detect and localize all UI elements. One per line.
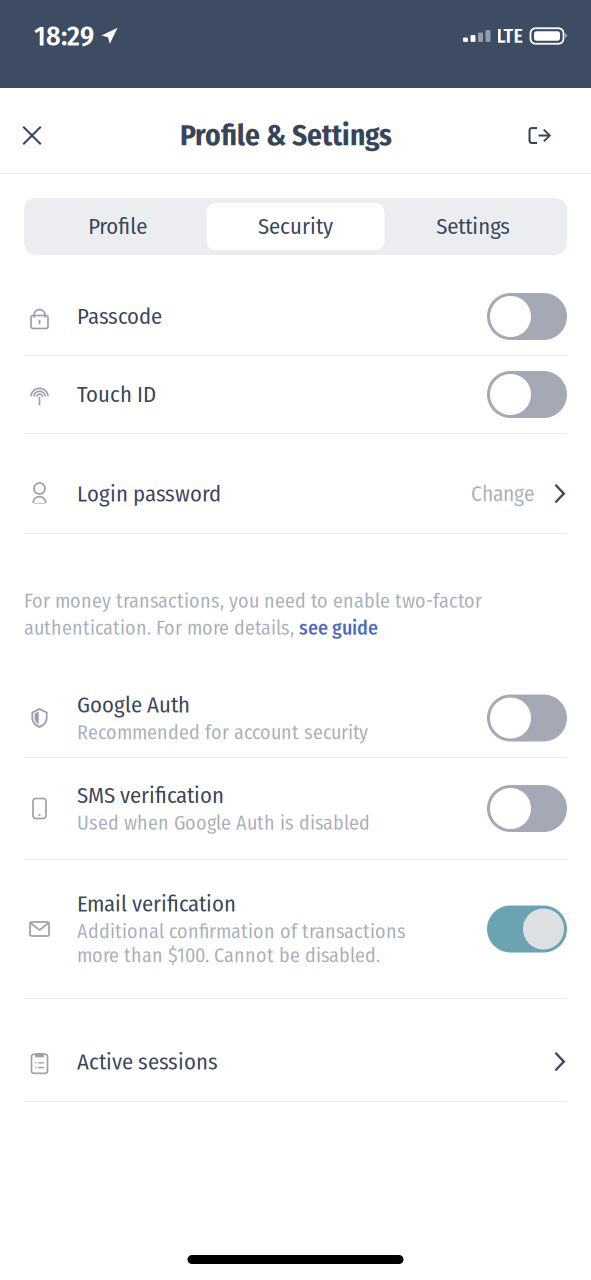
staticText: Passcode bbox=[77, 303, 162, 330]
staticText: Additional confirmation of transactions … bbox=[77, 920, 406, 968]
staticText: LTE bbox=[496, 24, 523, 48]
staticText: Google Auth bbox=[77, 691, 190, 719]
staticText: Change bbox=[471, 481, 535, 507]
button[interactable]: Close bbox=[9, 106, 55, 164]
button[interactable]: Passcode bbox=[0, 278, 591, 355]
staticText: Security bbox=[258, 213, 333, 240]
button[interactable]: Security bbox=[207, 203, 384, 250]
staticText: Used when Google Auth is disabled bbox=[77, 811, 370, 835]
button[interactable]: Touch ID bbox=[0, 356, 591, 433]
staticText: Email verification bbox=[77, 890, 236, 918]
staticText: Login password bbox=[77, 480, 221, 508]
button[interactable]: Google Auth bbox=[0, 679, 591, 757]
staticText: Touch ID bbox=[77, 381, 156, 408]
button[interactable]: Email verification bbox=[0, 860, 591, 998]
button[interactable]: see guide bbox=[299, 616, 378, 640]
staticText: Recommended for account security bbox=[77, 721, 368, 745]
staticText: Settings bbox=[436, 213, 510, 240]
staticText: Profile bbox=[88, 213, 147, 240]
button[interactable]: Login password bbox=[0, 455, 591, 533]
button[interactable]: Settings bbox=[384, 203, 562, 250]
staticText: SMS verification bbox=[77, 782, 224, 809]
button[interactable]: Active sessions bbox=[0, 1023, 591, 1101]
staticText: authentication. For more details, bbox=[24, 616, 299, 640]
button[interactable]: SMS verification bbox=[0, 758, 591, 859]
button[interactable]: Log out bbox=[517, 106, 563, 164]
staticText: Profile & Settings bbox=[180, 118, 392, 153]
button[interactable]: Profile bbox=[29, 203, 207, 250]
staticText: 18:29 bbox=[34, 19, 94, 53]
staticText: see guide bbox=[299, 616, 378, 640]
staticText: For money transactions, you need to enab… bbox=[24, 589, 482, 613]
staticText: Active sessions bbox=[77, 1048, 218, 1076]
